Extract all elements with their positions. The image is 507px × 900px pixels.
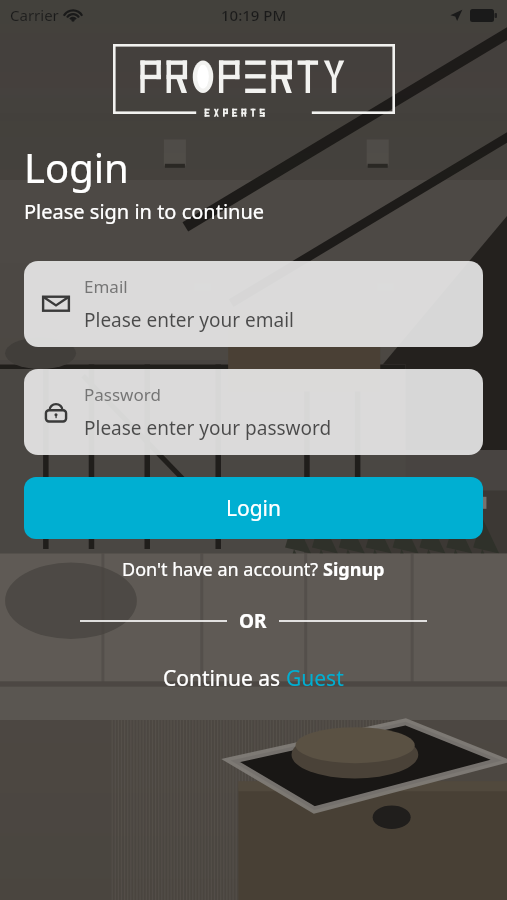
staticText: Continue as (163, 664, 286, 693)
staticText: Email (84, 275, 128, 298)
staticText: Carrier (10, 5, 59, 25)
staticText: Don't have an account? (122, 557, 323, 582)
button[interactable]: Don't have an account? (0, 555, 507, 584)
staticText: Guest (286, 664, 344, 693)
button[interactable]: Password (24, 369, 483, 455)
button[interactable]: Email (24, 261, 483, 347)
staticText: 10:19 PM (221, 5, 287, 25)
button[interactable]: Login (24, 477, 483, 539)
button[interactable]: Continue as (0, 662, 507, 695)
staticText: OR (239, 608, 267, 634)
staticText: Signup (323, 557, 385, 582)
staticText: Please enter your password (84, 415, 332, 441)
staticText: Password (84, 383, 161, 406)
staticText: Login (226, 494, 282, 523)
staticText: Please enter your email (84, 307, 295, 333)
staticText: Login (24, 140, 129, 194)
staticText: Please sign in to continue (24, 198, 265, 225)
